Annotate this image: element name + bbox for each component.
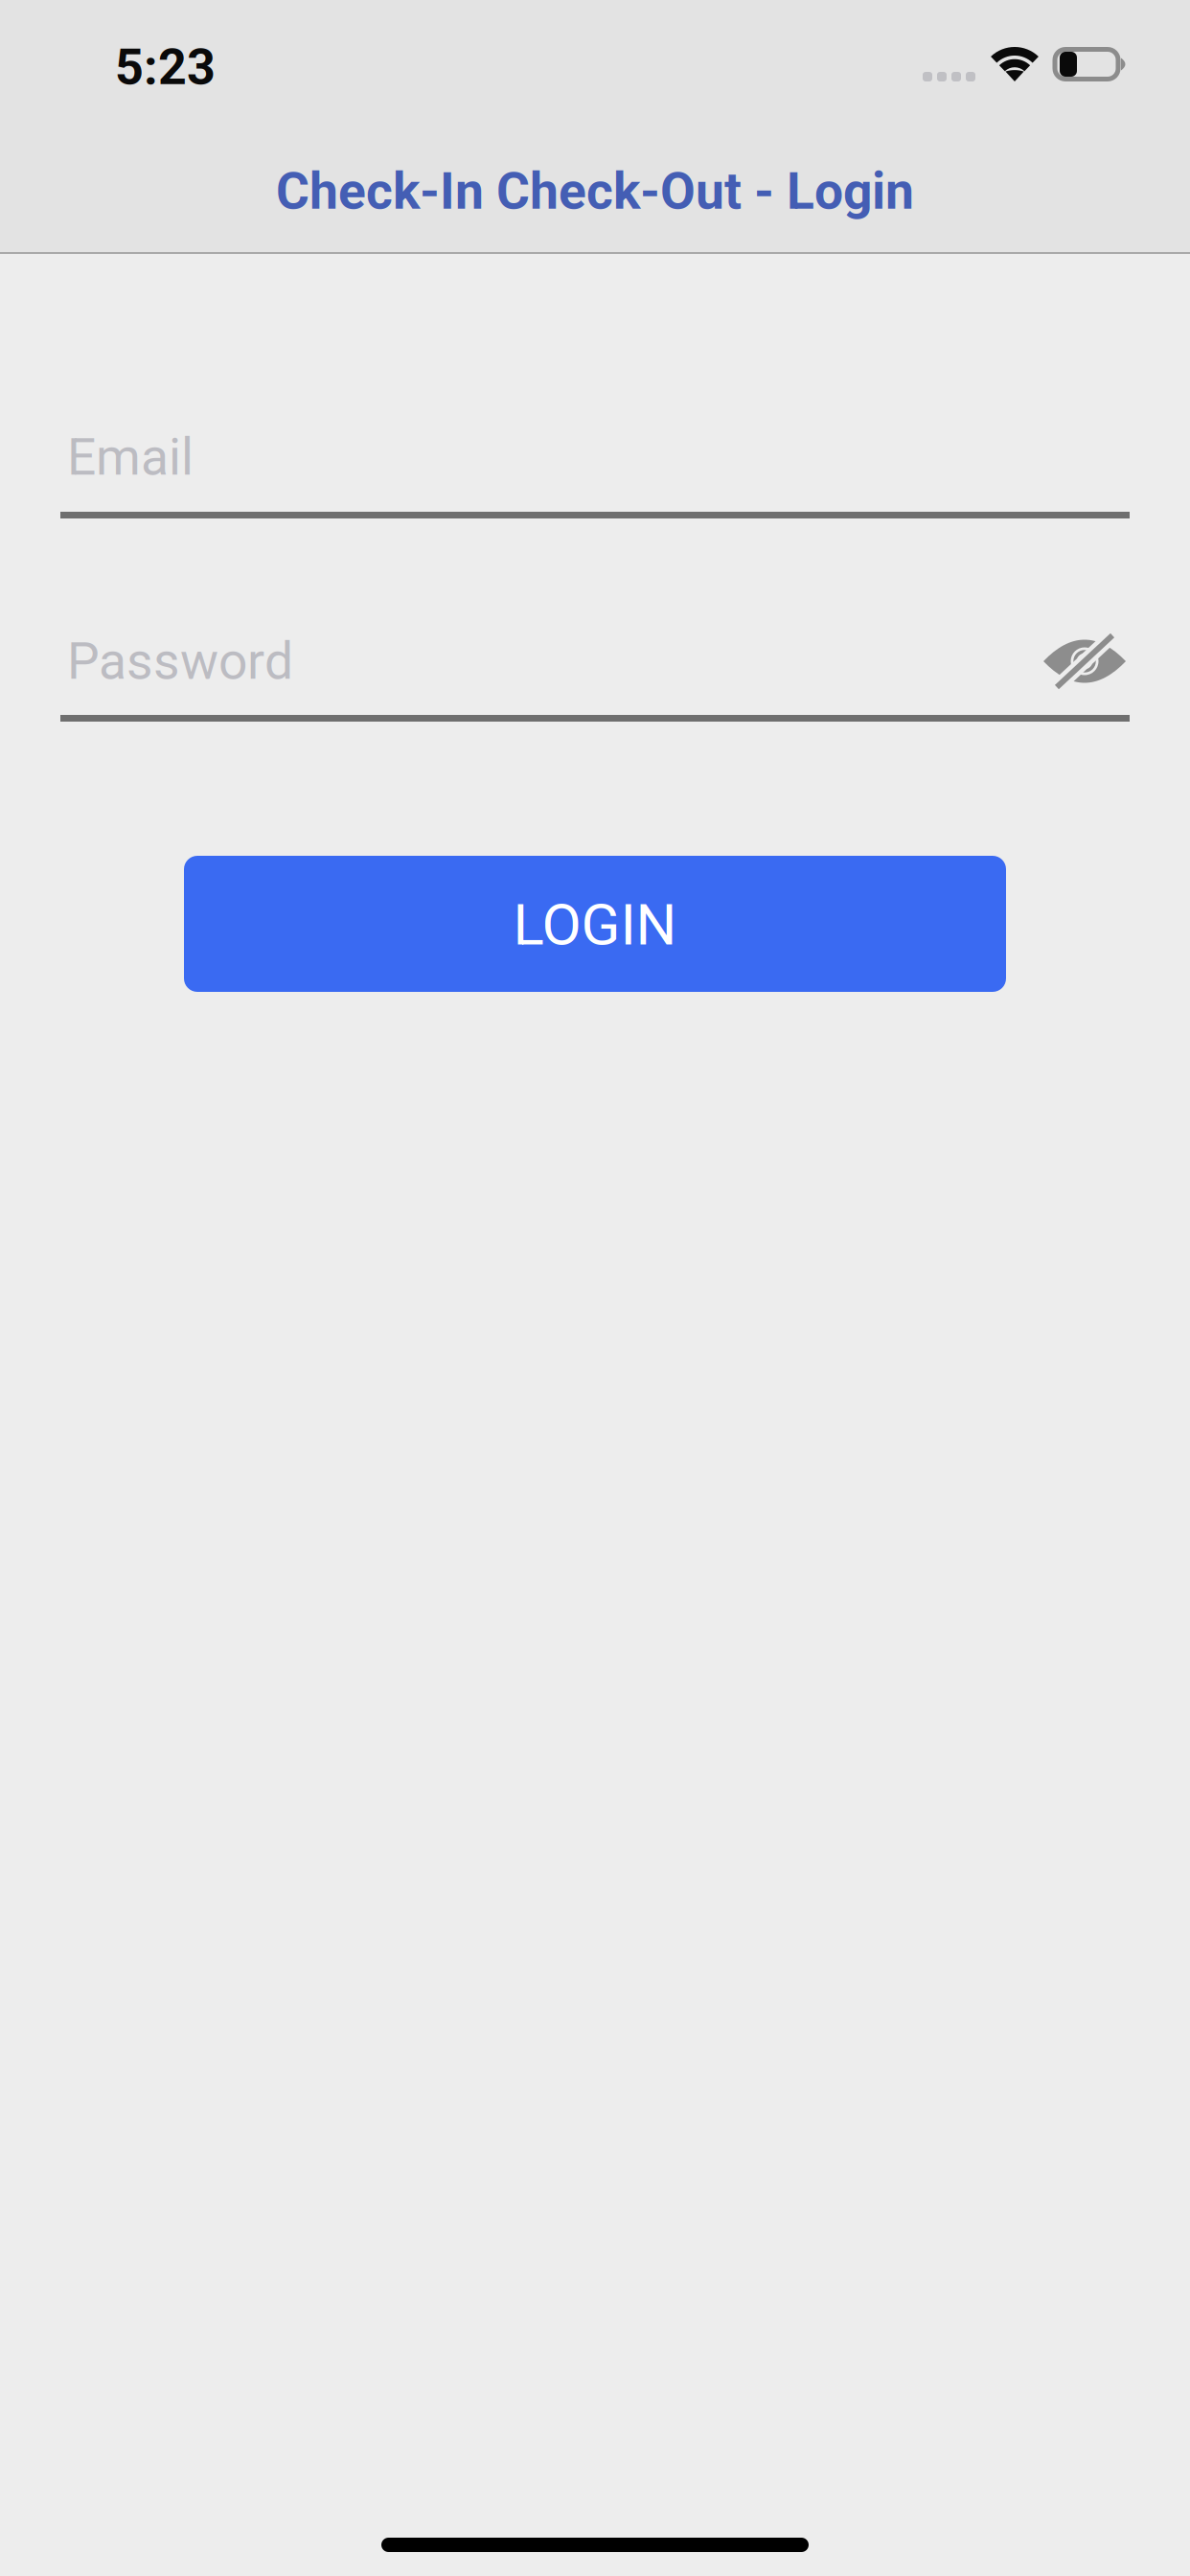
button[interactable]: LOGIN bbox=[184, 856, 1006, 992]
staticText: Password bbox=[67, 631, 293, 691]
staticText: LOGIN bbox=[513, 891, 677, 958]
button[interactable]: Show password bbox=[1043, 634, 1130, 688]
staticText: Check-In Check-Out - Login bbox=[276, 161, 914, 221]
staticText: Email bbox=[67, 427, 194, 487]
button[interactable]: Email bbox=[60, 424, 1130, 518]
button[interactable]: Password bbox=[60, 628, 1130, 722]
staticText: 5:23 bbox=[115, 38, 216, 96]
